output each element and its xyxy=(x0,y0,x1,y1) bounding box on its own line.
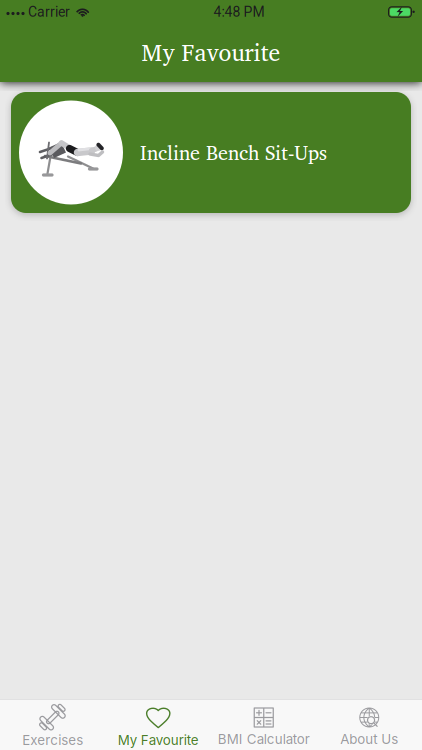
staticText: 4:48 PM xyxy=(213,4,264,20)
button[interactable]: My Favourite xyxy=(105,700,211,750)
staticText: Exercises xyxy=(22,732,83,748)
button[interactable]: About Us xyxy=(316,700,422,750)
staticText: About Us xyxy=(340,731,398,747)
staticText: My Favourite xyxy=(141,33,280,71)
staticText: BMI Calculator xyxy=(218,731,310,747)
staticText: Carrier xyxy=(28,4,70,20)
staticText: Incline Bench Sit-Ups xyxy=(140,136,327,169)
staticText: My Favourite xyxy=(118,732,199,748)
button[interactable]: BMI Calculator xyxy=(211,700,316,750)
button[interactable]: Exercises xyxy=(0,700,105,750)
button[interactable]: Incline Bench Sit-Ups xyxy=(11,92,411,213)
